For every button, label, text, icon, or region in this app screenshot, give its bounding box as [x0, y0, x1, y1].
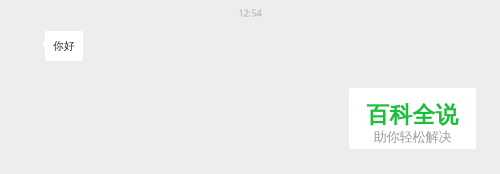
staticText: 你好	[53, 39, 75, 52]
button[interactable]: 百科全说	[349, 88, 476, 149]
staticText: 助你轻松解决	[373, 129, 451, 145]
button[interactable]: 你好	[42, 31, 83, 61]
staticText: 百科全说	[366, 101, 458, 129]
staticText: 12:54	[238, 7, 261, 19]
